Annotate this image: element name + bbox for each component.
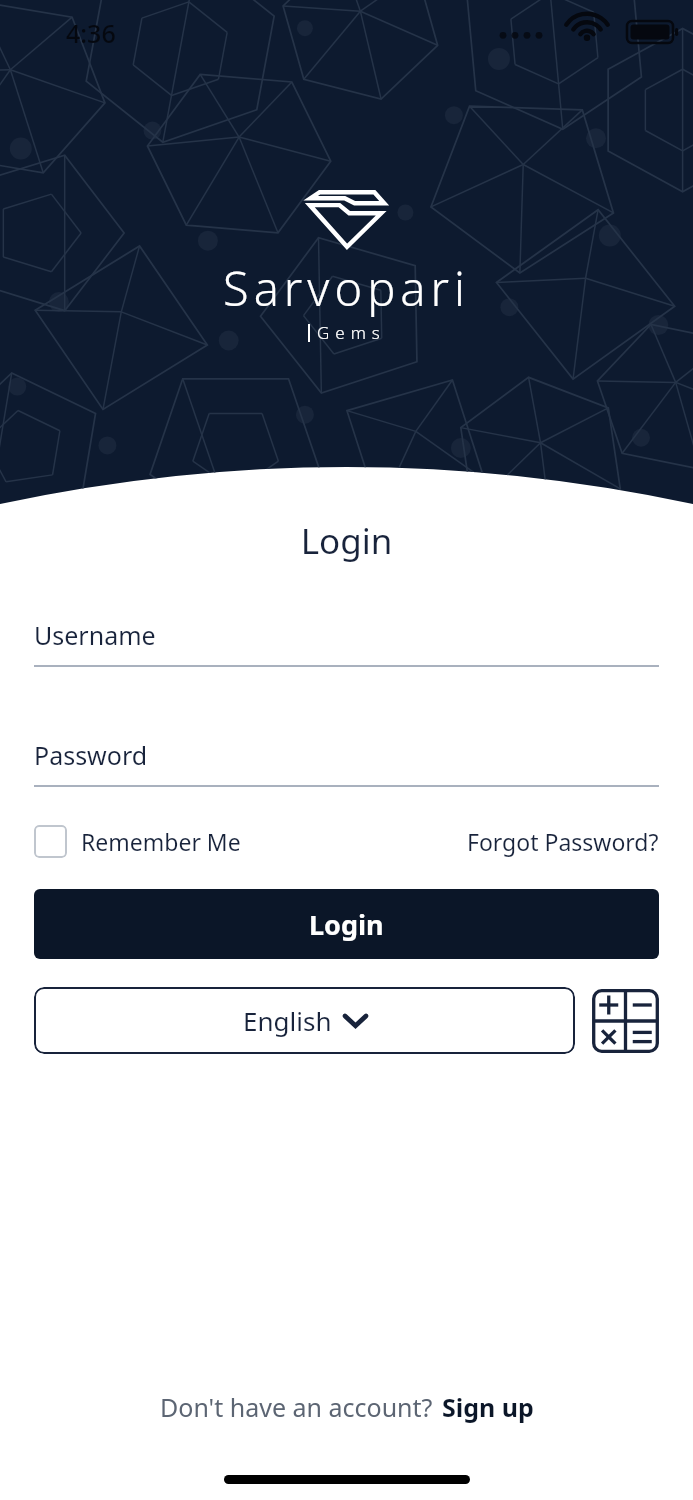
staticText: Login: [0, 517, 693, 565]
staticText: Remember Me: [81, 826, 241, 857]
button[interactable]: Login: [34, 889, 659, 959]
button[interactable]: Username: [34, 618, 659, 667]
button[interactable]: Password: [34, 738, 659, 787]
button[interactable]: English: [34, 987, 575, 1054]
button[interactable]: Calculator: [592, 989, 659, 1053]
staticText: 4:36: [66, 16, 116, 50]
staticText: Gems: [317, 321, 386, 344]
button[interactable]: Remember Me: [34, 825, 241, 858]
staticText: Forgot Password?: [467, 826, 659, 857]
staticText: English: [243, 1003, 332, 1038]
staticText: Sign up: [442, 1390, 534, 1424]
button[interactable]: Forgot Password?: [467, 826, 659, 857]
staticText: Don't have an account?: [160, 1390, 433, 1424]
button[interactable]: Don't have an account?: [0, 1390, 693, 1424]
staticText: Password: [34, 738, 148, 772]
staticText: Username: [34, 618, 156, 652]
staticText: Sarvopari: [223, 256, 470, 320]
staticText: Login: [309, 906, 384, 943]
